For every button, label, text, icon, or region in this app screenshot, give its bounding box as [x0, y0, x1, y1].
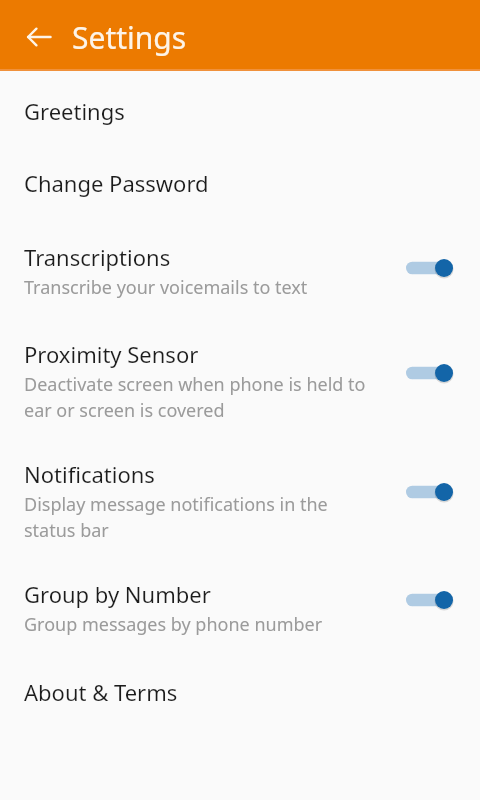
button[interactable]: Group by Number toggle — [406, 585, 454, 615]
button[interactable]: Change Password — [0, 143, 480, 217]
staticText: Group messages by phone number — [24, 612, 323, 637]
button[interactable]: Greetings — [0, 71, 480, 143]
button[interactable]: Back — [18, 20, 60, 54]
staticText: Transcribe your voicemails to text — [24, 275, 308, 300]
button[interactable]: Notifications toggle — [406, 477, 454, 507]
button[interactable]: Proximity Sensor toggle — [406, 358, 454, 388]
button[interactable]: Transcriptions toggle — [406, 253, 454, 283]
button[interactable]: Notifications — [0, 437, 480, 557]
staticText: Deactivate screen when phone is held to … — [24, 372, 374, 422]
staticText: Greetings — [24, 96, 125, 126]
button[interactable]: Transcriptions — [0, 217, 480, 317]
staticText: Notifications — [24, 459, 155, 489]
staticText: Display message notifications in the sta… — [24, 492, 374, 542]
staticText: Change Password — [24, 168, 209, 198]
staticText: Proximity Sensor — [24, 339, 199, 369]
button[interactable]: About & Terms — [0, 657, 480, 727]
staticText: Group by Number — [24, 579, 211, 609]
button[interactable]: Group by Number — [0, 557, 480, 657]
staticText: Transcriptions — [24, 242, 171, 272]
staticText: About & Terms — [24, 677, 178, 707]
staticText: Settings — [72, 17, 187, 58]
button[interactable]: Proximity Sensor — [0, 317, 480, 437]
